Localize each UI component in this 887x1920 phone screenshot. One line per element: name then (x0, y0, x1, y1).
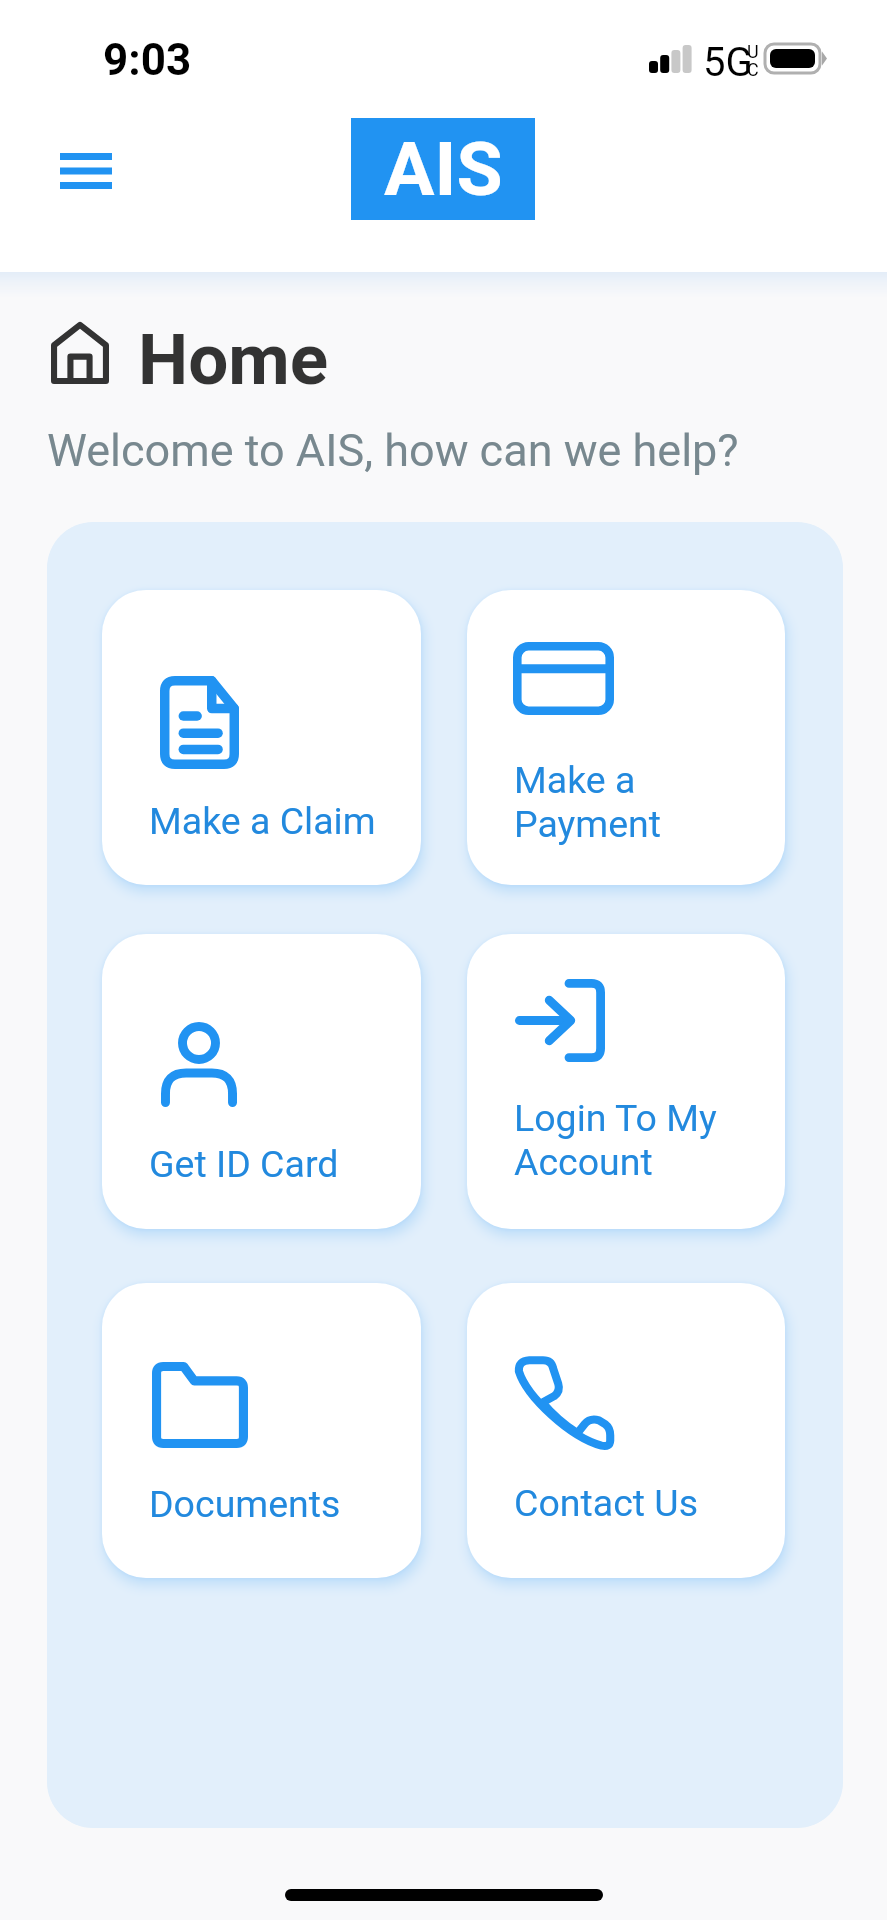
staticText: Home (138, 318, 329, 401)
button[interactable]: Open menu (44, 134, 128, 208)
staticText: 9:03 (103, 34, 192, 86)
staticText: Make a Payment (514, 758, 662, 846)
staticText: Contact Us (514, 1481, 699, 1525)
button[interactable]: Make a Payment (467, 590, 785, 885)
button[interactable]: Contact Us (467, 1283, 785, 1578)
staticText: Login To My Account (514, 1096, 717, 1184)
staticText: Documents (149, 1482, 341, 1526)
button[interactable]: AIS (351, 118, 535, 220)
button[interactable]: Get ID Card (102, 934, 421, 1229)
staticText: 5G (703, 39, 753, 86)
button[interactable]: Login To My Account (467, 934, 785, 1229)
staticText: Welcome to AIS, how can we help? (47, 424, 739, 477)
staticText: Make a Claim (149, 799, 376, 843)
staticText: AIS (384, 125, 503, 213)
staticText: Get ID Card (149, 1142, 339, 1186)
button[interactable]: Documents (102, 1283, 421, 1578)
staticText: C (747, 59, 759, 80)
button[interactable]: Make a Claim (102, 590, 421, 885)
staticText: U (747, 41, 759, 62)
